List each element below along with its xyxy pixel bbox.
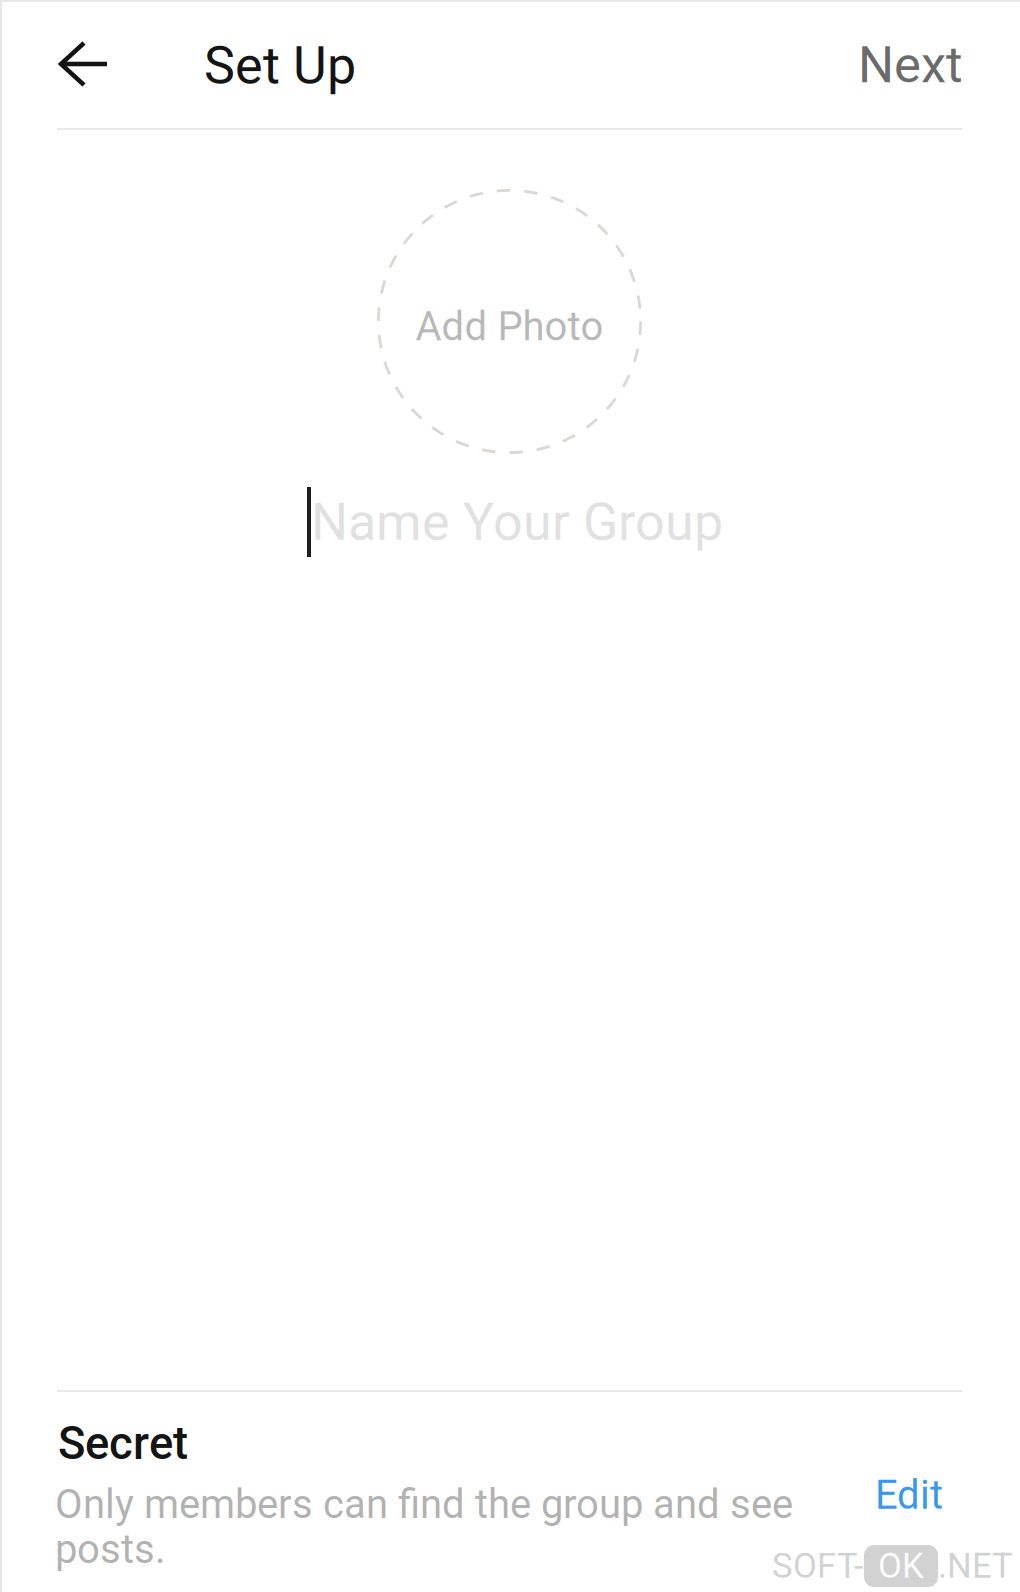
staticText: posts. [55, 1526, 166, 1573]
staticText: .NET [938, 1546, 1013, 1586]
button[interactable]: Add Photo [377, 189, 642, 454]
button[interactable]: Next [803, 16, 963, 114]
staticText: Add Photo [415, 303, 603, 350]
staticText: Only members can find the group and see [55, 1481, 793, 1528]
staticText: OK [878, 1546, 924, 1586]
staticText: Name Your Group [311, 491, 723, 552]
staticText: Set Up [204, 35, 356, 96]
staticText: SOFT- [772, 1546, 864, 1586]
staticText: Secret [58, 1417, 188, 1470]
staticText: Edit [875, 1472, 943, 1518]
button[interactable]: Edit [849, 1457, 969, 1533]
button[interactable]: Back [23, 15, 145, 113]
staticText: Next [858, 35, 963, 95]
button[interactable]: Name Your Group [307, 487, 723, 557]
